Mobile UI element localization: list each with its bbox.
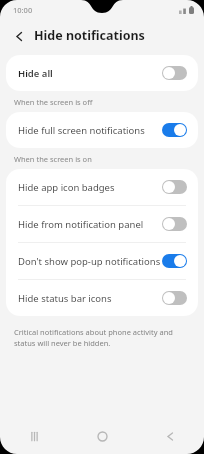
button[interactable]: Off	[162, 66, 187, 80]
button[interactable]: Off	[162, 291, 187, 305]
staticText: Hide notifications	[34, 27, 145, 44]
staticText: When the screen is off	[14, 97, 93, 107]
button[interactable]: Hide app icon badges	[6, 169, 198, 205]
button[interactable]: Off	[162, 217, 187, 231]
button[interactable]: Don't show pop-up notifications	[6, 243, 198, 279]
button[interactable]: Hide from notification panel	[6, 206, 198, 242]
staticText: Hide from notification panel	[18, 218, 162, 231]
staticText: Hide status bar icons	[18, 292, 162, 305]
button[interactable]: Recents	[0, 418, 68, 454]
button[interactable]: Back	[8, 25, 30, 47]
button[interactable]: On	[162, 123, 187, 137]
staticText: When the screen is on	[14, 154, 92, 164]
staticText: 10:00	[13, 5, 33, 15]
staticText: Hide all	[18, 67, 162, 80]
button[interactable]: Home	[68, 418, 136, 454]
button[interactable]: Back	[136, 418, 204, 454]
button[interactable]: Off	[162, 180, 187, 194]
staticText: Don't show pop-up notifications	[18, 255, 162, 268]
button[interactable]: Hide all	[6, 55, 198, 91]
button[interactable]: Hide status bar icons	[6, 280, 198, 316]
staticText: Hide full screen notifications	[18, 124, 162, 137]
staticText: Hide app icon badges	[18, 181, 162, 194]
staticText: Critical notifications about phone activ…	[14, 327, 184, 348]
button[interactable]: Hide full screen notifications	[6, 112, 198, 148]
button[interactable]: On	[162, 254, 187, 268]
